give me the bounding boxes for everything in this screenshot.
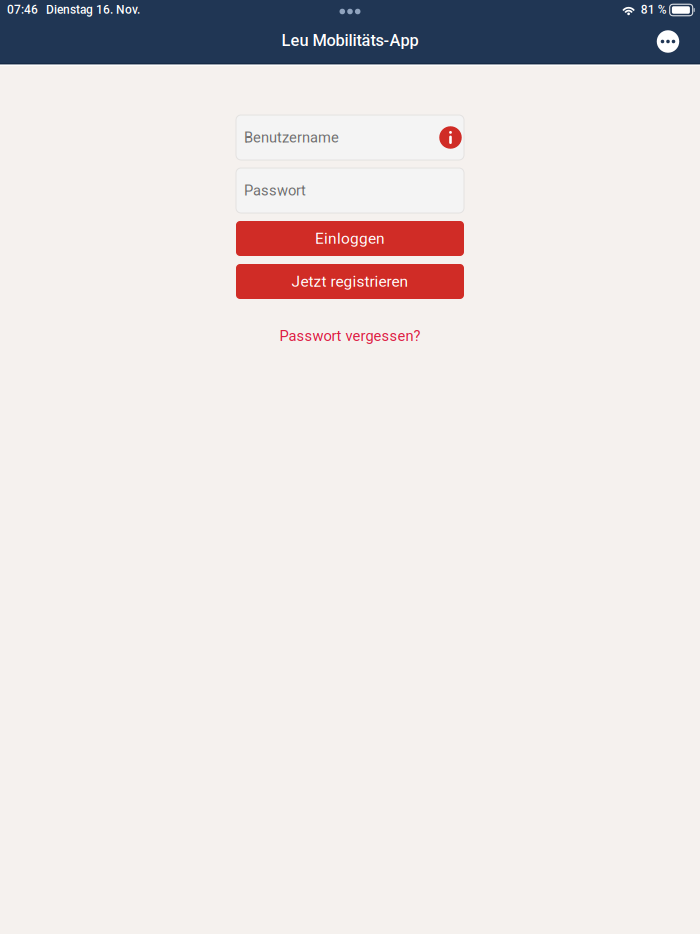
staticText: Passwort vergessen? xyxy=(279,327,420,345)
staticText: Dienstag 16. Nov. xyxy=(46,3,140,17)
staticText: Leu Mobilitäts-App xyxy=(281,31,418,50)
button[interactable]: Passwort vergessen? xyxy=(279,322,420,350)
button[interactable]: Weitere Optionen xyxy=(647,20,689,63)
staticText: Passwort xyxy=(244,182,306,199)
staticText: Benutzername xyxy=(244,129,339,146)
staticText: Jetzt registrieren xyxy=(291,272,408,290)
button[interactable]: Info zum Benutzernamen xyxy=(437,115,463,160)
staticText: 07:46 xyxy=(7,3,38,17)
button[interactable]: Jetzt registrieren xyxy=(236,264,464,299)
staticText: 81 % xyxy=(641,3,667,17)
staticText: Einloggen xyxy=(315,229,385,247)
button[interactable]: Einloggen xyxy=(236,221,464,256)
